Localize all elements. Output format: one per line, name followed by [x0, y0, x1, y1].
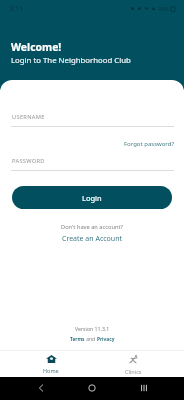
- button[interactable]: Clinics: [92, 351, 174, 375]
- other: Recent apps: [140, 384, 148, 392]
- button[interactable]: Home: [10, 351, 92, 374]
- other: Home: [88, 384, 96, 392]
- staticText: Terms: [70, 336, 85, 343]
- staticText: USERNAME: [12, 113, 45, 121]
- staticText: Privacy: [97, 336, 115, 343]
- staticText: 43%: [158, 5, 169, 12]
- staticText: 5:11: [10, 4, 24, 13]
- staticText: Welcome!: [11, 40, 62, 54]
- button[interactable]: Login: [12, 186, 172, 209]
- staticText: Login to The Neighborhood Club: [11, 55, 131, 66]
- button[interactable]: Create an Account: [62, 234, 123, 244]
- button[interactable]: Privacy: [97, 336, 115, 343]
- staticText: Don't have an account?: [61, 223, 123, 231]
- staticText: and: [85, 336, 97, 343]
- button[interactable]: Terms: [70, 336, 85, 343]
- staticText: PASSWORD: [12, 157, 45, 165]
- staticText: Forgot password?: [124, 140, 175, 148]
- button[interactable]: Forgot password?: [124, 140, 175, 148]
- staticText: Clinics: [125, 368, 142, 375]
- staticText: Home: [43, 367, 59, 374]
- staticText: Version 11.3.1: [75, 325, 110, 332]
- other: Back: [37, 384, 45, 392]
- staticText: Create an Account: [62, 234, 123, 244]
- staticText: Login: [82, 193, 102, 203]
